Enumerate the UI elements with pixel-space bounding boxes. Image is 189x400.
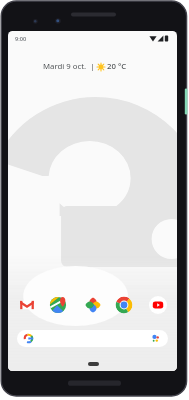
button[interactable]: Mardi 9 oct. | <box>43 61 127 72</box>
staticText: 9:00 <box>15 35 27 43</box>
button[interactable]: YouTube <box>149 296 167 314</box>
button[interactable]: Gmail <box>18 296 36 314</box>
button[interactable]: Search <box>17 330 168 347</box>
button[interactable]: Photos <box>84 296 102 314</box>
button[interactable]: Chrome <box>115 296 133 314</box>
staticText: 20 °C <box>107 61 127 72</box>
button[interactable]: Home <box>88 362 99 366</box>
button[interactable]: Maps <box>49 296 67 314</box>
staticText: Mardi 9 oct. | <box>43 61 95 72</box>
